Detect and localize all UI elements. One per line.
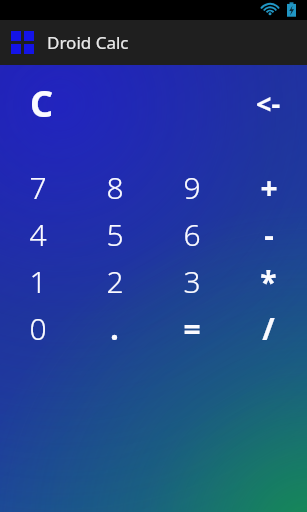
staticText: = [183, 308, 201, 349]
staticText: 9 [183, 167, 201, 208]
button[interactable]: 4 [0, 211, 76, 258]
staticText: <- [256, 85, 281, 122]
button[interactable]: 3 [153, 258, 230, 305]
button[interactable]: Droid Calc [0, 20, 307, 65]
button[interactable]: + [230, 164, 307, 211]
button[interactable]: 0 [0, 305, 76, 352]
button[interactable]: - [230, 211, 307, 258]
staticText: * [260, 261, 277, 302]
button[interactable]: Backspace [153, 65, 307, 141]
button[interactable]: 1 [0, 258, 76, 305]
staticText: + [260, 167, 278, 208]
staticText: 4 [29, 214, 47, 255]
button[interactable]: * [230, 258, 307, 305]
staticText: Droid Calc [47, 31, 129, 54]
staticText: 1 [29, 261, 47, 302]
button[interactable]: 5 [76, 211, 153, 258]
button[interactable]: 2 [76, 258, 153, 305]
button[interactable]: / [230, 305, 307, 352]
button[interactable]: 8 [76, 164, 153, 211]
button[interactable]: Clear [0, 65, 153, 141]
staticText: . [110, 308, 119, 349]
button[interactable]: 6 [153, 211, 230, 258]
staticText: 7 [29, 167, 47, 208]
staticText: 3 [183, 261, 201, 302]
staticText: 6 [183, 214, 201, 255]
staticText: C [30, 79, 54, 128]
button[interactable]: 9 [153, 164, 230, 211]
staticText: 2 [106, 261, 124, 302]
staticText: 5 [106, 214, 124, 255]
button[interactable]: 7 [0, 164, 76, 211]
button[interactable]: . [76, 305, 153, 352]
staticText: / [262, 308, 275, 349]
staticText: 8 [106, 167, 124, 208]
staticText: 0 [29, 308, 47, 349]
staticText: - [264, 214, 274, 255]
button[interactable]: = [153, 305, 230, 352]
